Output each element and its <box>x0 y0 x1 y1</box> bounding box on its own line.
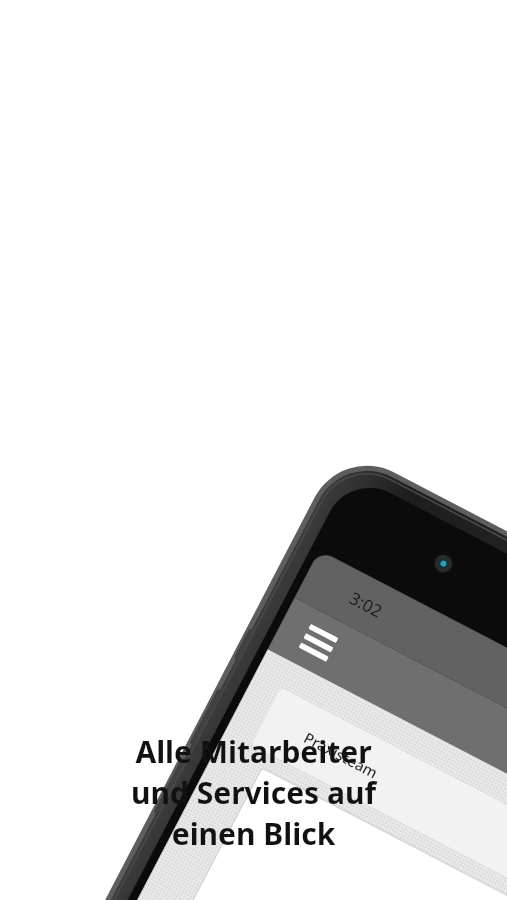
staticText: einen Blick <box>0 813 507 854</box>
staticText: und Services auf <box>0 772 507 813</box>
staticText: Alle Mitarbeiter <box>0 731 507 772</box>
button[interactable]: Alle Mitarbeiter <box>0 731 507 854</box>
other: Smartphone-Vorschau der App <box>0 0 507 900</box>
